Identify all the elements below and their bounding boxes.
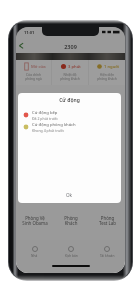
- staticText: Khong 4 phút trước: [32, 128, 65, 133]
- staticText: Nhà: [31, 254, 38, 258]
- staticText: Đã 2 phút trước: [32, 116, 58, 121]
- staticText: Tài khoản: [100, 254, 115, 258]
- staticText: Nhiệt độ phòng khách: [60, 73, 80, 81]
- button[interactable]: Phòng Vệ Sinh Obama: [16, 214, 53, 235]
- staticText: Phòng Test Lab: [99, 215, 116, 227]
- button[interactable]: Phòng Test Lab: [89, 214, 125, 235]
- staticText: Phòng Vệ Sinh Obama: [22, 215, 48, 227]
- staticText: Phòng Khách: [64, 215, 78, 227]
- staticText: Ok: [66, 192, 73, 198]
- button[interactable]: Phòng Khách: [53, 214, 89, 235]
- button[interactable]: Cử động phòng khách: [18, 121, 121, 133]
- button[interactable]: Nhà: [16, 240, 53, 262]
- button[interactable]: Tài khoản: [89, 240, 125, 262]
- staticText: 11:01: [24, 30, 35, 35]
- button[interactable]: Back: [16, 40, 27, 51]
- staticText: Cử động bếp: [32, 110, 58, 116]
- staticText: Cử động phòng khách: [32, 122, 76, 128]
- button[interactable]: 3 phút: [52, 60, 88, 85]
- staticText: Hiện diện phòng khách: [97, 73, 117, 81]
- staticText: Kịch bản: [65, 254, 78, 258]
- staticText: 3 phút: [68, 64, 81, 70]
- button[interactable]: Mở cửa: [16, 60, 51, 85]
- staticText: 2309: [16, 43, 125, 50]
- staticText: Cử động: [18, 97, 121, 104]
- button[interactable]: Cử động bếp: [18, 109, 121, 121]
- staticText: 1 nguời: [104, 64, 119, 70]
- button[interactable]: Kịch bản: [53, 240, 89, 262]
- staticText: Mở cửa: [31, 64, 46, 70]
- button[interactable]: 1 nguời: [89, 60, 125, 85]
- button[interactable]: Ok: [18, 187, 121, 203]
- staticText: Cửa chính phòng ngủ: [25, 73, 42, 81]
